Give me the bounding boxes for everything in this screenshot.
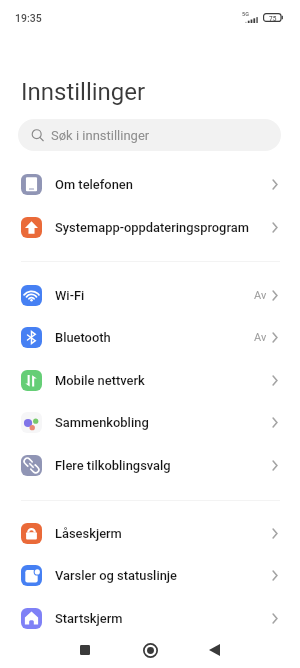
staticText: 5G — [242, 11, 249, 17]
staticText: Mobile nettverk — [55, 373, 145, 388]
button[interactable]: Bluetooth — [0, 316, 300, 359]
button[interactable]: Mobile nettverk — [0, 359, 300, 402]
staticText: Sammenkobling — [55, 415, 149, 430]
button[interactable]: Home — [126, 632, 174, 668]
staticText: Wi-Fi — [55, 288, 85, 303]
button[interactable]: Søk i innstillinger — [18, 119, 281, 151]
staticText: Innstillinger — [21, 78, 146, 106]
staticText: Om telefonen — [55, 177, 133, 192]
button[interactable]: Back — [190, 632, 238, 668]
button[interactable]: Låseskjerm — [0, 512, 300, 555]
button[interactable]: Om telefonen — [0, 163, 300, 206]
button[interactable]: Startskjerm — [0, 597, 300, 640]
staticText: 75 — [269, 15, 277, 23]
staticText: Låseskjerm — [55, 526, 122, 541]
staticText: Systemapp-oppdateringsprogram — [55, 220, 249, 235]
button[interactable]: Flere tilkoblingsvalg — [0, 444, 300, 487]
button[interactable]: Wi-Fi — [0, 274, 300, 317]
staticText: Varsler og statuslinje — [55, 568, 178, 583]
staticText: Bluetooth — [55, 330, 111, 345]
button[interactable]: Varsler og statuslinje — [0, 554, 300, 597]
staticText: Av — [254, 289, 267, 302]
staticText: 19:35 — [15, 12, 42, 24]
staticText: Startskjerm — [55, 611, 123, 626]
button[interactable]: Recent apps — [61, 632, 109, 668]
staticText: Flere tilkoblingsvalg — [55, 458, 171, 473]
staticText: Søk i innstillinger — [51, 128, 150, 143]
button[interactable]: Sammenkobling — [0, 401, 300, 444]
staticText: Av — [254, 331, 267, 344]
button[interactable]: Systemapp-oppdateringsprogram — [0, 206, 300, 249]
